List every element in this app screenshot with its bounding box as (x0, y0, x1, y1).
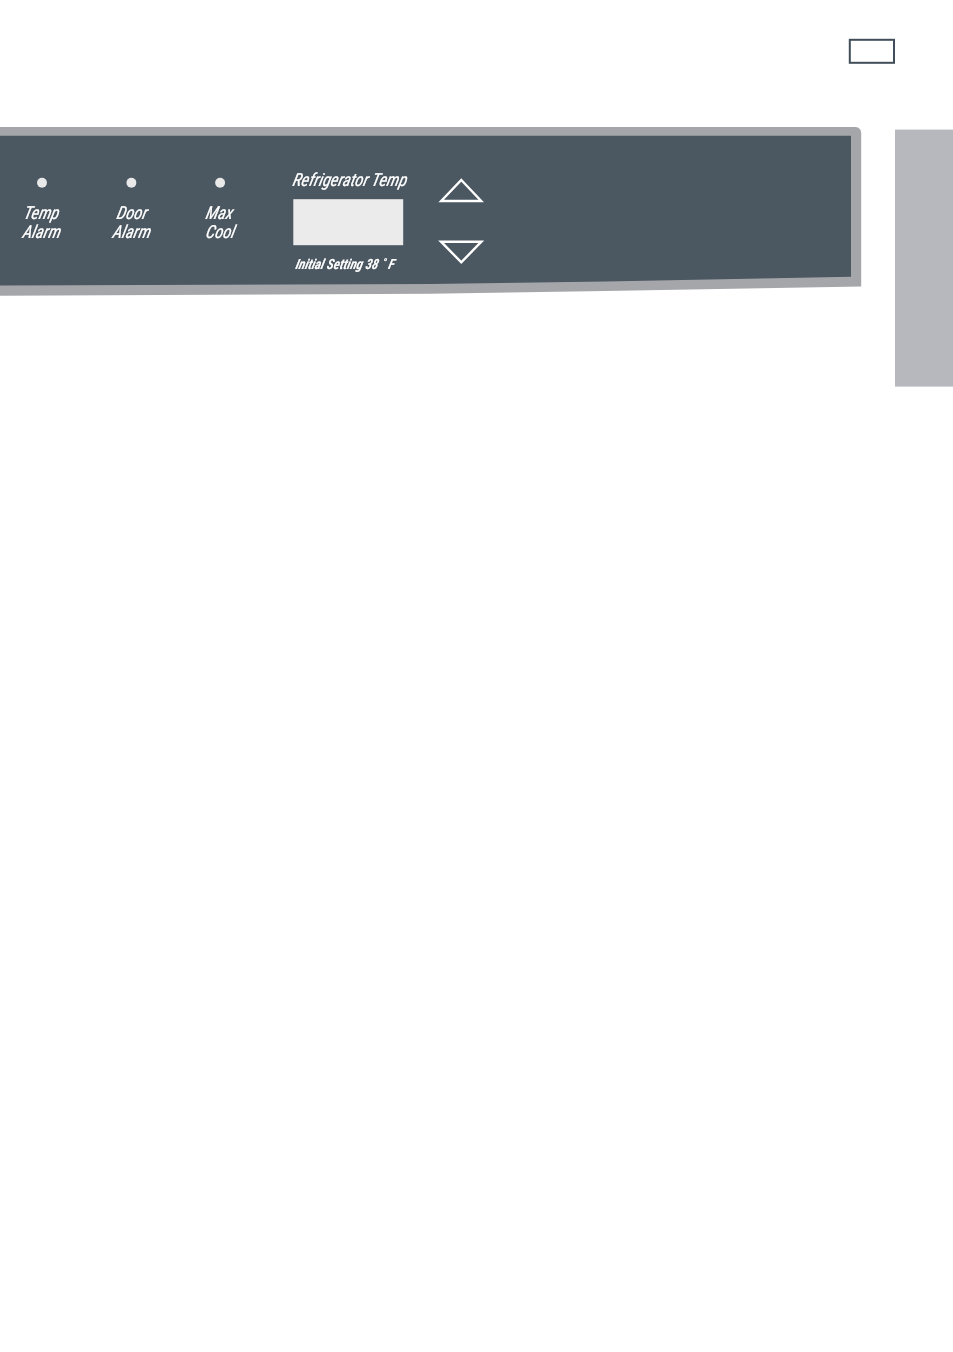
button[interactable]: Temp Alarm (18, 168, 66, 244)
staticText: Alarm (22, 221, 60, 242)
button[interactable]: Refrigerator temperature display (293, 199, 403, 245)
staticText: Alarm (112, 221, 150, 242)
staticText: Cool (205, 221, 235, 242)
staticText: Max (205, 202, 233, 223)
button[interactable]: Door Alarm (107, 168, 155, 244)
staticText: Temp (23, 202, 59, 223)
staticText: Door (116, 202, 146, 223)
staticText: Initial Setting 38 ˚ F (295, 256, 394, 272)
staticText: Refrigerator Temp (292, 169, 407, 190)
button[interactable]: Lower refrigerator temperature (434, 235, 490, 270)
button[interactable]: Max Cool (196, 168, 244, 244)
button[interactable]: Raise refrigerator temperature (434, 173, 490, 208)
